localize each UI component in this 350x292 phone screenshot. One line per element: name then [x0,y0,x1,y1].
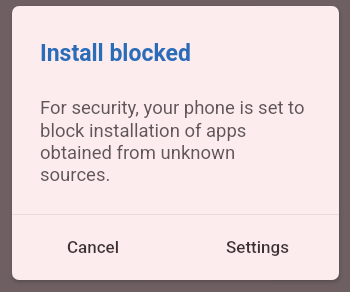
button[interactable]: Cancel [12,215,175,280]
staticText: Cancel [67,237,120,257]
staticText: Install blocked [40,40,191,67]
staticText: For security, your phone is set to block… [40,97,308,185]
staticText: Settings [226,237,289,257]
button[interactable]: Settings [175,215,339,280]
